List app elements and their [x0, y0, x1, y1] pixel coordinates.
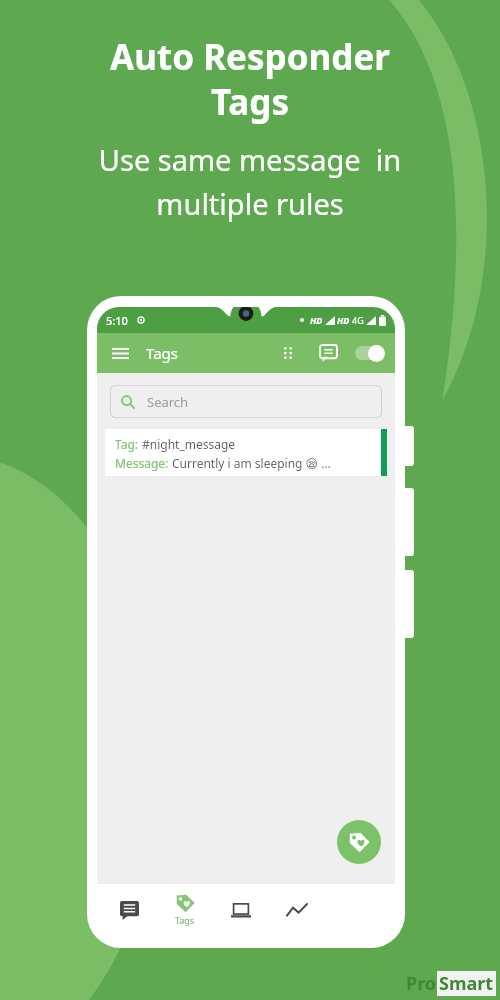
staticText: HD [337, 314, 350, 326]
staticText: Message: [115, 455, 172, 471]
staticText: HD [310, 314, 323, 326]
button[interactable]: Add tag [337, 820, 381, 864]
staticText: Currently i am sleeping 😪 … [172, 455, 331, 471]
staticText: Tags [146, 343, 178, 363]
staticText: Smart [439, 971, 494, 996]
staticText: Tags [175, 914, 195, 926]
staticText: #night_message [142, 436, 236, 452]
staticText: Search [147, 393, 189, 411]
staticText: Auto Responder Tags [14, 33, 486, 126]
button[interactable]: Enable [353, 340, 385, 366]
button[interactable]: Menu [107, 340, 133, 366]
staticText: 5:10 [106, 313, 128, 328]
button[interactable]: Search [110, 385, 382, 418]
button[interactable]: Statistics [269, 884, 325, 936]
button[interactable]: Tag: [105, 429, 387, 476]
staticText: Use same message in multiple rules [10, 140, 490, 223]
button[interactable]: Reorder [275, 340, 301, 366]
button[interactable]: Pro [406, 971, 496, 996]
button[interactable]: Messages [315, 340, 341, 366]
staticText: Pro [406, 971, 437, 996]
staticText: 4G [352, 314, 364, 326]
button[interactable]: Tags [157, 884, 213, 936]
button[interactable]: Web [213, 884, 269, 936]
button[interactable]: Messages [101, 884, 157, 936]
staticText: Tag: [115, 436, 142, 452]
